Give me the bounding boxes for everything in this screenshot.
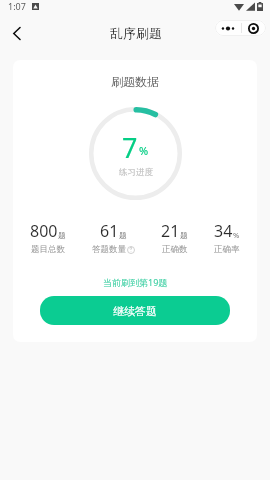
staticText: 练习进度 <box>119 167 153 178</box>
staticText: 34 <box>214 220 233 242</box>
button[interactable]: 继续答题 <box>40 296 230 325</box>
staticText: 乱序刷题 <box>110 25 162 41</box>
staticText: % <box>139 143 149 158</box>
staticText: 正确率 <box>214 244 240 255</box>
staticText: 正确数 <box>162 244 188 255</box>
staticText: 刷题数据 <box>111 74 159 89</box>
staticText: 题 <box>58 231 66 240</box>
staticText: 1:07 <box>8 0 26 12</box>
button[interactable]: More options <box>215 20 241 36</box>
staticText: 继续答题 <box>113 304 157 318</box>
staticText: 当前刷到第19题 <box>103 276 168 288</box>
staticText: 800 <box>30 220 58 242</box>
staticText: 题目总数 <box>31 244 65 255</box>
staticText: 题 <box>119 231 127 240</box>
staticText: 61 <box>100 220 119 242</box>
button[interactable]: Help about answered count <box>127 246 135 254</box>
staticText: 答题数量 <box>92 244 126 255</box>
button[interactable]: Back <box>3 19 31 47</box>
staticText: 题 <box>180 231 188 240</box>
staticText: 21 <box>161 220 180 242</box>
button[interactable]: Close mini program <box>242 20 266 36</box>
staticText: % <box>233 230 240 240</box>
staticText: 7 <box>122 129 138 166</box>
